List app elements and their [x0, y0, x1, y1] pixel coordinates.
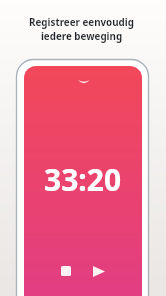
staticText: Registreer eenvoudig iedere beweging: [29, 16, 134, 43]
button[interactable]: Stop: [56, 261, 76, 281]
staticText: 33:20: [44, 159, 122, 200]
button[interactable]: Play: [89, 261, 109, 281]
